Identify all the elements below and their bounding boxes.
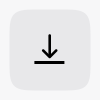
button[interactable]: Download xyxy=(0,0,100,100)
